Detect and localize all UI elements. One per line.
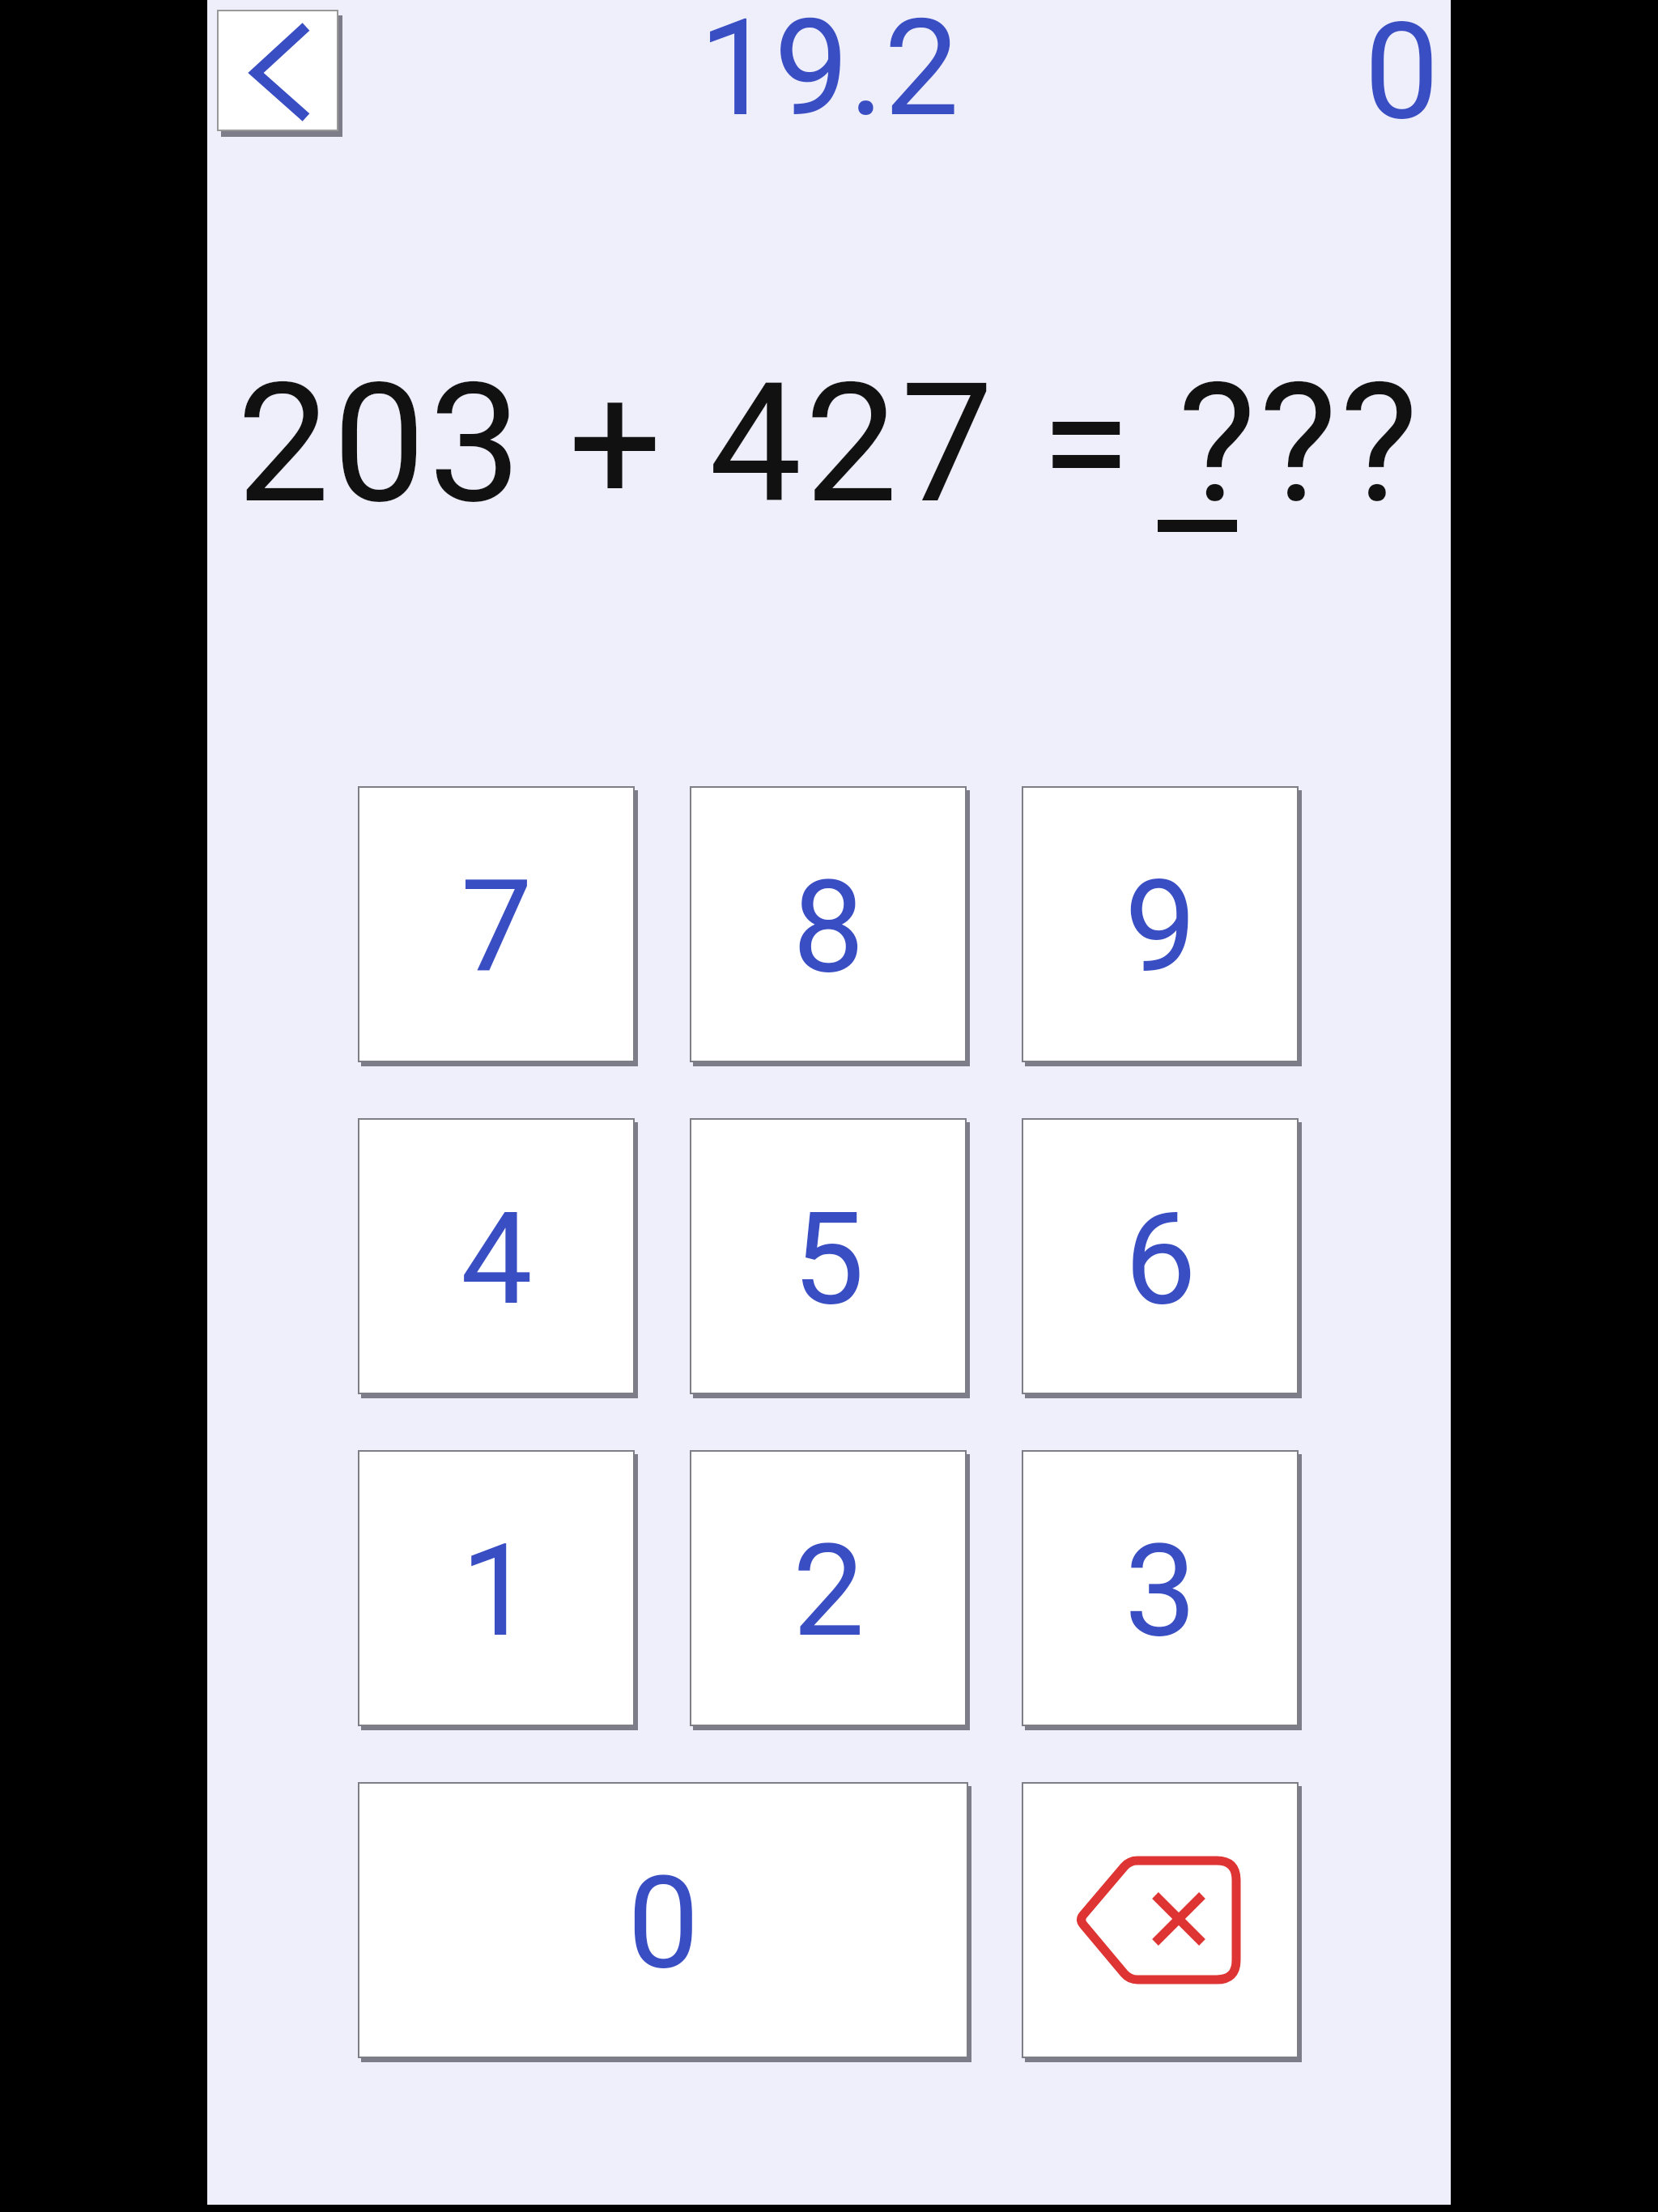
staticText: 203 + 427 = ???: [207, 347, 1451, 541]
staticText: 0: [1364, 0, 1439, 150]
staticText: 5: [793, 1184, 865, 1334]
staticText: 1: [461, 1516, 533, 1665]
button[interactable]: 6: [1022, 1118, 1299, 1394]
button[interactable]: 3: [1022, 1450, 1299, 1726]
button[interactable]: 0: [358, 1782, 968, 2058]
button[interactable]: [1022, 1782, 1299, 2058]
button[interactable]: 2: [690, 1450, 967, 1726]
button[interactable]: 1: [358, 1450, 635, 1726]
staticText: 19.2: [207, 0, 1451, 147]
button[interactable]: 9: [1022, 786, 1299, 1062]
staticText: 0: [627, 1848, 699, 1997]
staticText: 8: [793, 852, 865, 1002]
button[interactable]: 8: [690, 786, 967, 1062]
staticText: 2: [793, 1516, 865, 1665]
button[interactable]: [217, 10, 338, 131]
staticText: 4: [461, 1184, 533, 1334]
button[interactable]: 5: [690, 1118, 967, 1394]
button[interactable]: 4: [358, 1118, 635, 1394]
staticText: 6: [1124, 1184, 1197, 1334]
staticText: 3: [1124, 1516, 1197, 1665]
staticText: 7: [461, 852, 533, 1002]
button[interactable]: 7: [358, 786, 635, 1062]
staticText: 9: [1124, 852, 1197, 1002]
